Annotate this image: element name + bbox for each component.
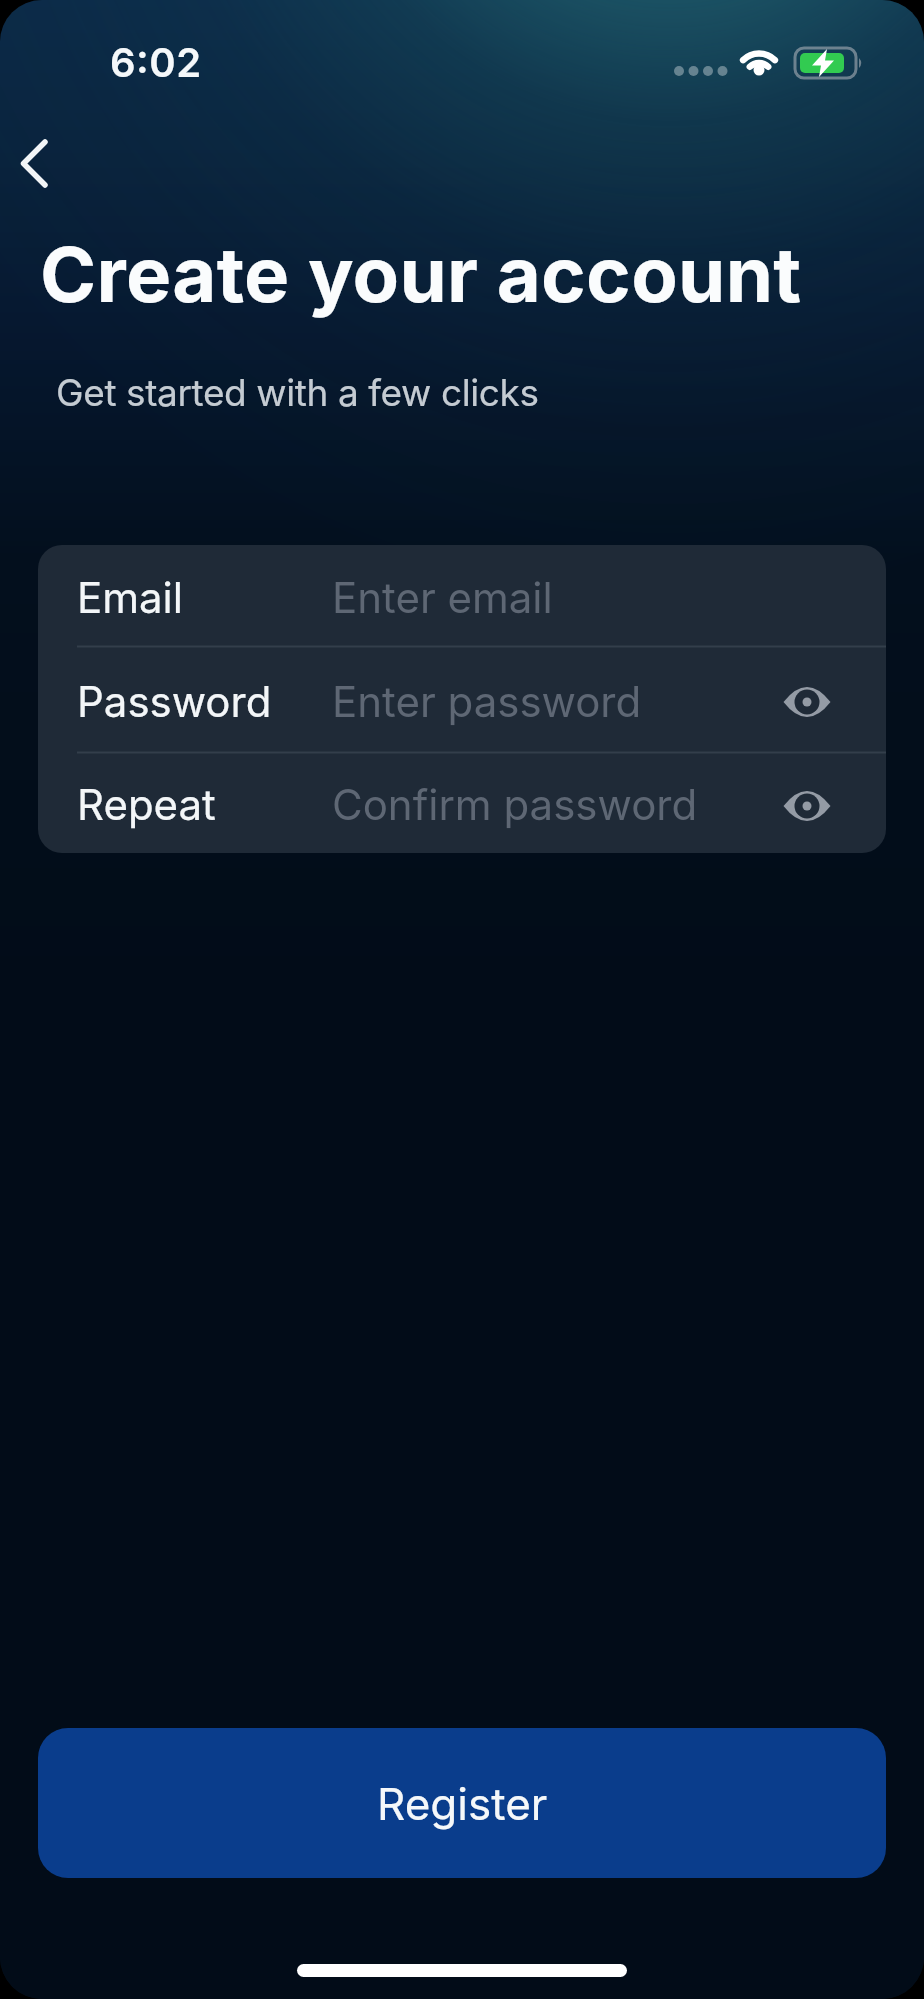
- staticText: Repeat: [77, 779, 216, 830]
- staticText: Create your account: [40, 228, 802, 320]
- staticText: Register: [377, 1777, 548, 1830]
- staticText: 6:02: [110, 38, 202, 86]
- staticText: Enter password: [332, 676, 642, 727]
- staticText: Enter email: [332, 572, 553, 623]
- staticText: Password: [77, 676, 272, 727]
- staticText: Confirm password: [332, 779, 698, 830]
- staticText: Email: [77, 572, 183, 623]
- staticText: Get started with a few clicks: [56, 370, 539, 415]
